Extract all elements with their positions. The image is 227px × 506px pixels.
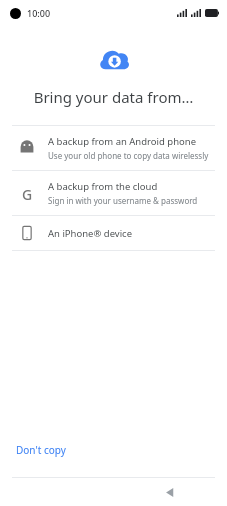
button[interactable]: Android [0, 126, 227, 170]
button[interactable]: Don't copy [8, 437, 74, 463]
other: Android [19, 140, 35, 156]
staticText: G [22, 185, 33, 201]
other: Cloud download [99, 47, 129, 71]
staticText: Don't copy [16, 443, 66, 457]
staticText: Sign in with your username & password [48, 195, 198, 206]
button[interactable]: iPhone device [0, 216, 227, 250]
staticText: An iPhone® device [48, 227, 133, 240]
staticText: A backup from the cloud [48, 180, 158, 193]
staticText: Bring your data from… [14, 87, 213, 107]
other: iPhone device [19, 225, 35, 241]
staticText: A backup from an Android phone [48, 135, 197, 148]
button[interactable]: Back [158, 481, 180, 503]
button[interactable]: Google [0, 171, 227, 215]
other: Google [19, 185, 35, 201]
staticText: 10:00 [27, 7, 51, 19]
staticText: Use your old phone to copy data wireless… [48, 150, 209, 161]
